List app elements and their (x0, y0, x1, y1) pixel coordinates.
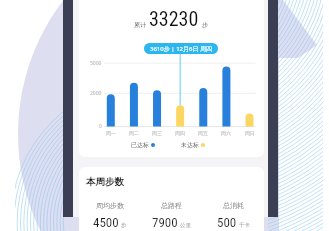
button[interactable]: 3610步 | 12月6日 周四 (144, 43, 218, 54)
staticText: 周二 (129, 130, 139, 136)
button[interactable]: 总消耗 (202, 201, 264, 230)
staticText: 未达标 (181, 141, 199, 149)
staticText: 公里 (180, 222, 191, 229)
staticText: 4500 (93, 215, 119, 230)
staticText: 5000 (90, 60, 102, 67)
staticText: 周日 (245, 130, 255, 136)
staticText: 500 (217, 215, 237, 230)
button[interactable]: 周均步数 (79, 201, 140, 230)
staticText: 周六 (221, 130, 231, 136)
staticText: 7900 (152, 215, 178, 230)
staticText: 33230 (149, 7, 199, 30)
staticText: 累计 (134, 21, 146, 29)
staticText: 本周步数 (86, 176, 124, 188)
staticText: 周均步数 (96, 201, 124, 210)
staticText: 千卡 (239, 222, 250, 229)
staticText: 周一 (106, 130, 116, 136)
button[interactable]: 总路程 (140, 201, 202, 230)
staticText: 3610步 | 12月6日 周四 (150, 45, 213, 53)
staticText: 总路程 (161, 201, 182, 210)
staticText: 0 (99, 123, 102, 130)
staticText: 已达标 (131, 141, 149, 149)
staticText: 步 (121, 222, 127, 229)
staticText: 总消耗 (223, 201, 244, 210)
staticText: 2000 (90, 90, 102, 97)
staticText: 周三 (152, 130, 162, 136)
staticText: 步 (202, 21, 208, 29)
staticText: 周五 (198, 130, 208, 136)
staticText: 周四 (175, 130, 185, 136)
